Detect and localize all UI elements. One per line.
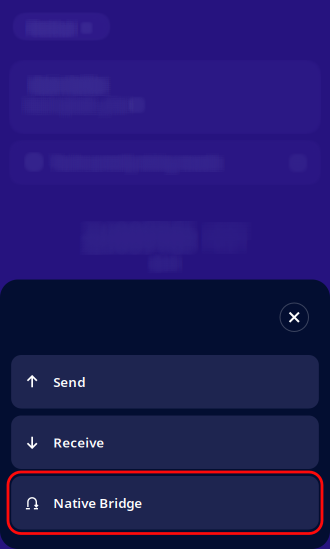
staticText: Main Wallet — [28, 80, 101, 98]
staticText: $0.41 — [150, 261, 177, 276]
staticText: You're currently mining rewards — [55, 150, 221, 164]
staticText: fetch1q0kd8...y7a4 — [26, 91, 129, 107]
button[interactable]: Send — [11, 355, 319, 408]
staticText: FET — [200, 215, 237, 245]
staticText: $0.41 — [152, 261, 179, 276]
staticText: fetch1q0kd8...y7a4 — [28, 91, 131, 107]
staticText: fetch1q0kd8...y7a4 — [20, 91, 123, 107]
staticText: Fetch.ai — [35, 15, 79, 31]
staticText: 2.009765 — [79, 212, 184, 246]
staticText: 2.009765 — [84, 214, 189, 249]
staticText: fetch1q0kd8...y7a4 — [24, 101, 127, 117]
staticText: 2.009765 — [92, 217, 197, 252]
staticText: Main Wallet — [30, 70, 103, 88]
staticText: 2.009765 — [89, 217, 194, 252]
button[interactable]: Native Bridge — [11, 476, 319, 529]
staticText: fetch1q0kd8...y7a4 — [26, 101, 129, 117]
staticText: Main Wallet — [32, 74, 105, 92]
staticText: 2.009765 — [92, 212, 197, 246]
staticText: Main Wallet — [38, 72, 111, 90]
staticText: Main Wallet — [26, 74, 99, 92]
staticText: Native Bridge — [53, 494, 142, 512]
staticText: Main Wallet — [36, 82, 109, 100]
staticText: 2.009765 — [79, 222, 184, 257]
staticText: 2.009765 — [84, 225, 189, 259]
staticText: 2.009765 — [94, 217, 199, 252]
staticText: 2.009765 — [89, 214, 194, 249]
button[interactable]: Receive — [11, 415, 319, 469]
staticText: Send — [53, 373, 85, 391]
staticText: You're currently mining rewards — [57, 150, 223, 164]
staticText: You're currently mining rewards — [52, 150, 218, 164]
staticText: fetch1q0kd8...y7a4 — [28, 101, 131, 117]
staticText: You're currently mining rewards — [59, 150, 225, 164]
staticText: fetch1q0kd8...y7a4 — [30, 103, 133, 118]
staticText: Fetch.ai — [28, 19, 72, 34]
staticText: fetch1q0kd8...y7a4 — [28, 93, 131, 109]
button[interactable]: Close — [280, 303, 308, 331]
staticText: fetch1q0kd8...y7a4 — [30, 101, 133, 117]
staticText: Fetch.ai — [31, 24, 75, 39]
staticText: $0.41 — [157, 261, 184, 276]
staticText: You're currently mining rewards — [50, 150, 216, 164]
staticText: 2.009765 — [86, 225, 191, 259]
staticText: FET — [213, 215, 250, 245]
staticText: Main Wallet — [38, 82, 111, 100]
staticText: fetch1q0kd8...y7a4 — [32, 101, 135, 117]
staticText: 2.009765 — [94, 214, 199, 249]
staticText: Fetch.ai — [29, 17, 73, 32]
staticText: 2.009765 — [86, 212, 191, 246]
staticText: $0.41 — [152, 260, 179, 274]
staticText: $0.41 — [155, 261, 182, 276]
staticText: fetch1q0kd8...y7a4 — [22, 103, 125, 118]
staticText: 2.009765 — [79, 227, 184, 262]
staticText: Fetch.ai — [28, 20, 72, 36]
staticText: Main Wallet — [32, 80, 105, 98]
staticText: Main Wallet — [38, 76, 111, 94]
